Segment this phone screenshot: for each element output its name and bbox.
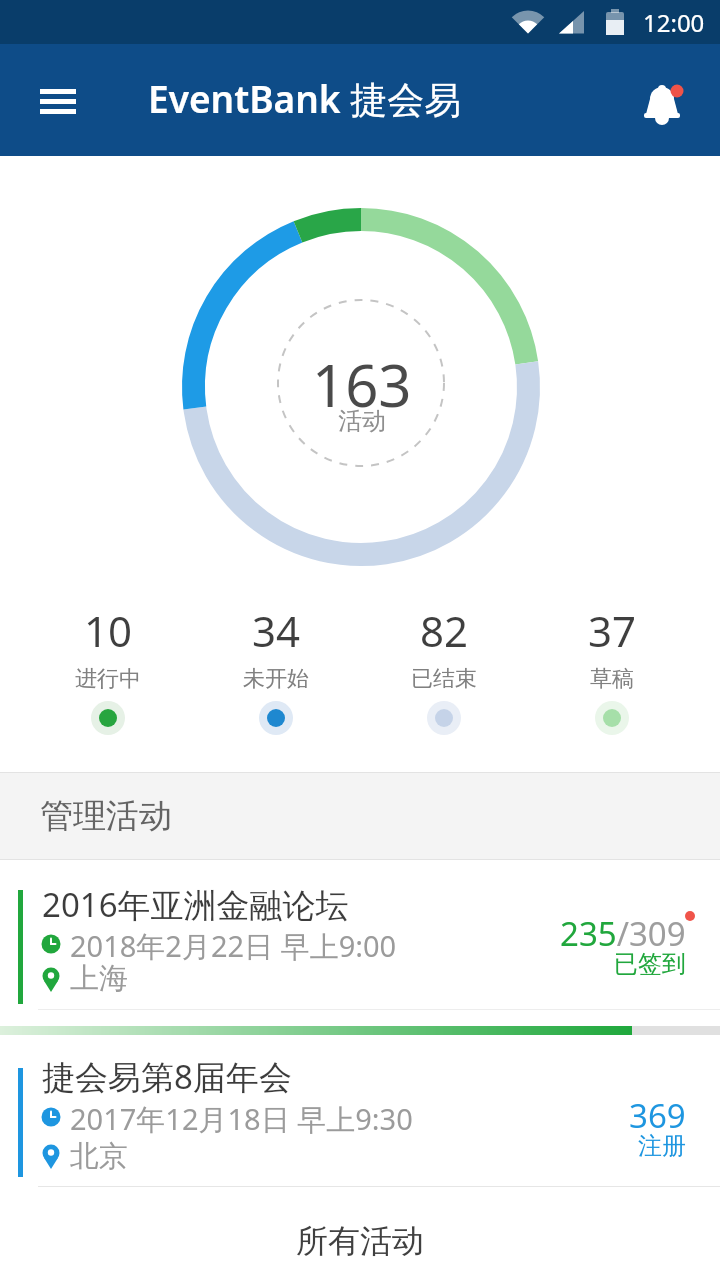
staticText: 37 (588, 602, 637, 659)
staticText: 2016年亚洲金融论坛 (42, 882, 349, 922)
button[interactable]: 捷会易第8届年会 (0, 1035, 720, 1193)
staticText: 已结束 (411, 665, 477, 693)
staticText: 2017年12月18日 早上9:30 (70, 1099, 413, 1135)
button[interactable]: 2016年亚洲金融论坛 (0, 860, 720, 1035)
button[interactable]: 所有活动 (0, 1193, 720, 1280)
staticText: 活动 (338, 406, 386, 436)
staticText: 注册 (638, 1131, 686, 1161)
button[interactable] (630, 72, 694, 136)
staticText: EventBank 捷会易 (148, 73, 462, 124)
staticText: 10 (84, 602, 133, 659)
staticText: 所有活动 (296, 1221, 424, 1261)
staticText: 163 (312, 345, 412, 424)
staticText: 12:00 (643, 6, 705, 39)
staticText: 上海 (70, 960, 128, 996)
staticText: 82 (420, 602, 469, 659)
staticText: 捷会易第8届年会 (42, 1054, 292, 1094)
staticText: 2018年2月22日 早上9:00 (70, 926, 397, 962)
staticText: 管理活动 (40, 795, 172, 837)
button[interactable] (30, 72, 86, 128)
staticText: 草稿 (590, 665, 634, 693)
staticText: 已签到 (614, 949, 686, 979)
staticText: 未开始 (243, 665, 309, 693)
staticText: 进行中 (75, 665, 141, 693)
staticText: 34 (252, 602, 301, 659)
staticText: 369 (629, 1093, 686, 1133)
staticText: 北京 (70, 1138, 128, 1174)
staticText: 235/309 (560, 911, 686, 951)
